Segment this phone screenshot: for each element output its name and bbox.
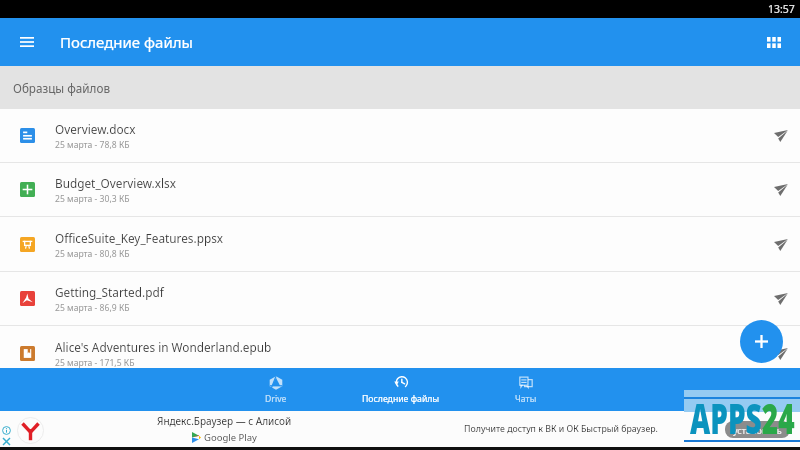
button[interactable]: Add — [740, 320, 783, 363]
button[interactable]: Overview.docx — [0, 109, 800, 162]
staticText: 25 марта - 80,8 КБ — [55, 248, 130, 260]
other: Ad info — [2, 426, 11, 435]
button[interactable]: Menu — [10, 25, 44, 59]
staticText: 25 марта - 30,3 КБ — [55, 193, 130, 205]
button[interactable]: Send — [762, 327, 800, 380]
staticText: Drive — [265, 393, 287, 405]
staticText: Getting_Started.pdf — [55, 284, 164, 300]
button[interactable]: Последние файлы — [338, 368, 463, 411]
button[interactable]: Getting_Started.pdf — [0, 272, 800, 325]
button[interactable]: Send — [762, 272, 800, 325]
staticText: 25 марта - 86,9 КБ — [55, 302, 130, 314]
staticText: Последние файлы — [362, 393, 439, 405]
button[interactable]: Alice's Adventures in Wonderland.epub — [0, 327, 800, 380]
staticText: OfficeSuite_Key_Features.ppsx — [55, 230, 224, 246]
staticText: Получите доступ к ВК и ОК Быстрый браузе… — [464, 423, 658, 435]
staticText: Последние файлы — [60, 32, 193, 52]
staticText: установить — [733, 424, 782, 436]
staticText: 25 марта - 171,5 КБ — [55, 357, 135, 369]
button[interactable]: Send — [762, 109, 800, 162]
button[interactable]: Чаты — [463, 368, 588, 411]
staticText: Чаты — [515, 393, 537, 405]
staticText: Google Play — [204, 431, 257, 444]
staticText: Budget_Overview.xlsx — [55, 175, 176, 191]
button[interactable]: Drive — [213, 368, 338, 411]
staticText: 24 — [762, 389, 795, 446]
staticText: APPS — [690, 389, 762, 446]
staticText: Overview.docx — [55, 121, 136, 137]
staticText: Яндекс.Браузер — с Алисой — [157, 414, 292, 428]
button[interactable]: Send — [762, 218, 800, 271]
staticText: 13:57 — [768, 2, 795, 16]
button[interactable]: OfficeSuite_Key_Features.ppsx — [0, 218, 800, 271]
button[interactable]: Grid view — [757, 25, 791, 59]
button[interactable]: Budget_Overview.xlsx — [0, 163, 800, 216]
staticText: Alice's Adventures in Wonderland.epub — [55, 339, 272, 355]
staticText: 25 марта - 78,8 КБ — [55, 139, 130, 151]
staticText: Образцы файлов — [13, 80, 111, 96]
button[interactable]: Send — [762, 163, 800, 216]
button[interactable]: Close ad — [2, 437, 11, 446]
